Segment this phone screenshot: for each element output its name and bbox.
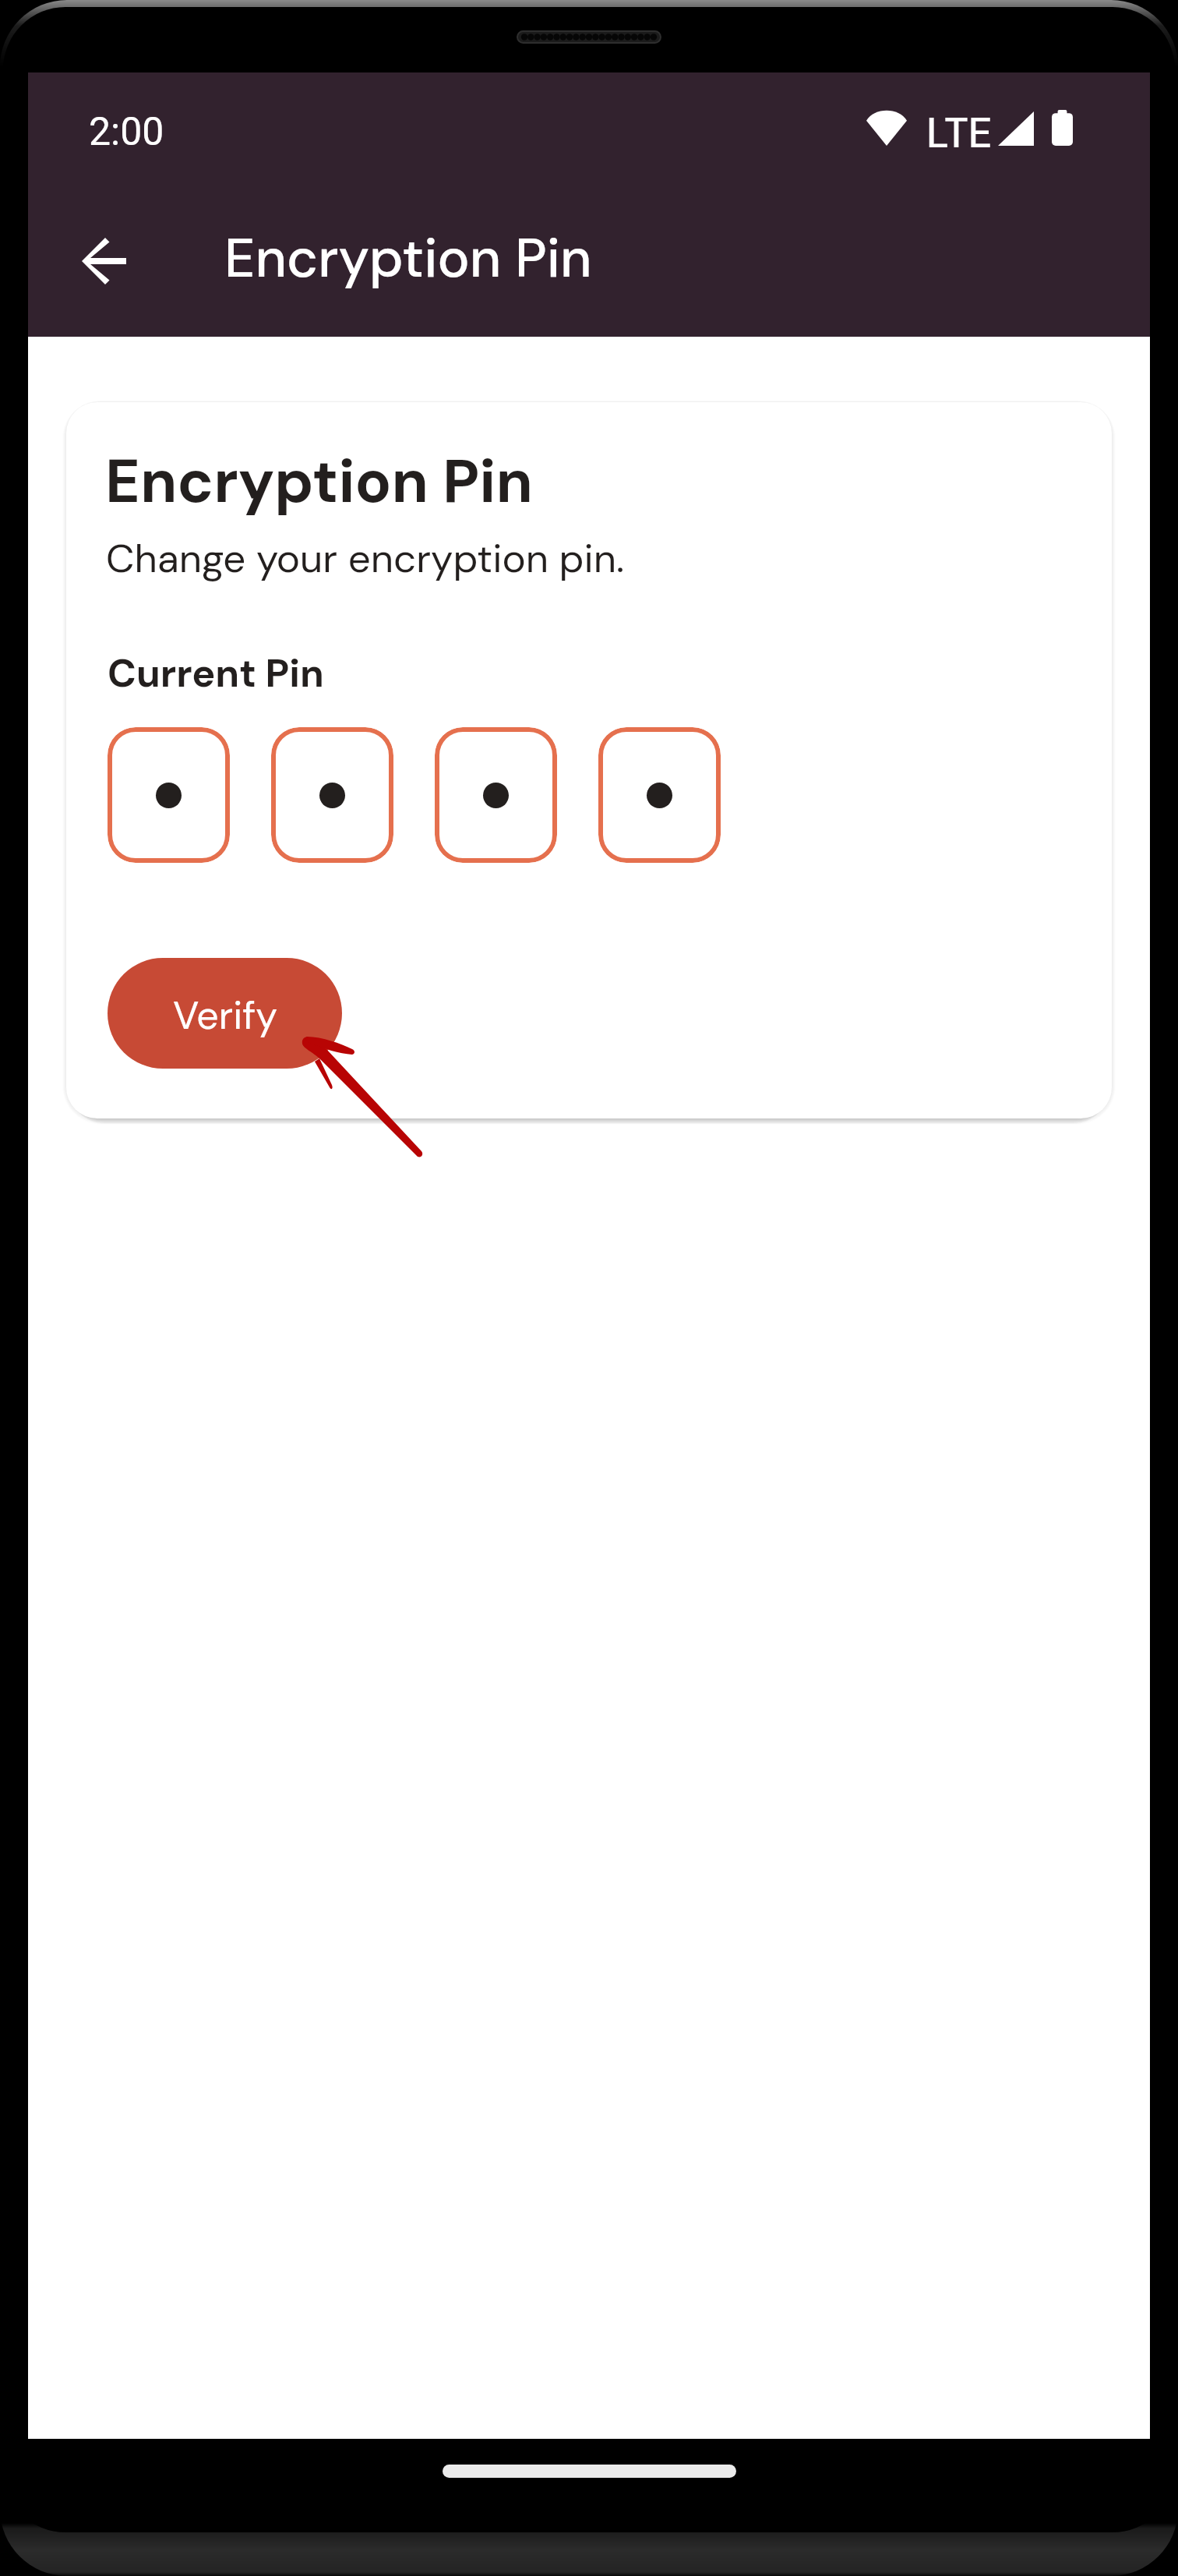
- button[interactable]: PIN digit 4: [598, 727, 721, 863]
- staticText: Change your encryption pin.: [106, 532, 625, 584]
- staticText: Encryption Pin: [105, 443, 533, 521]
- staticText: 2:00: [89, 109, 164, 155]
- staticText: Verify: [173, 990, 277, 1041]
- button[interactable]: Verify: [108, 958, 342, 1069]
- staticText: Current Pin: [108, 648, 324, 698]
- staticText: LTE: [926, 105, 993, 160]
- button[interactable]: PIN digit 2: [271, 727, 393, 863]
- button[interactable]: PIN digit 3: [435, 727, 557, 863]
- button[interactable]: PIN digit 1: [108, 727, 230, 863]
- button[interactable]: Back: [63, 220, 145, 302]
- staticText: Encryption Pin: [224, 224, 592, 294]
